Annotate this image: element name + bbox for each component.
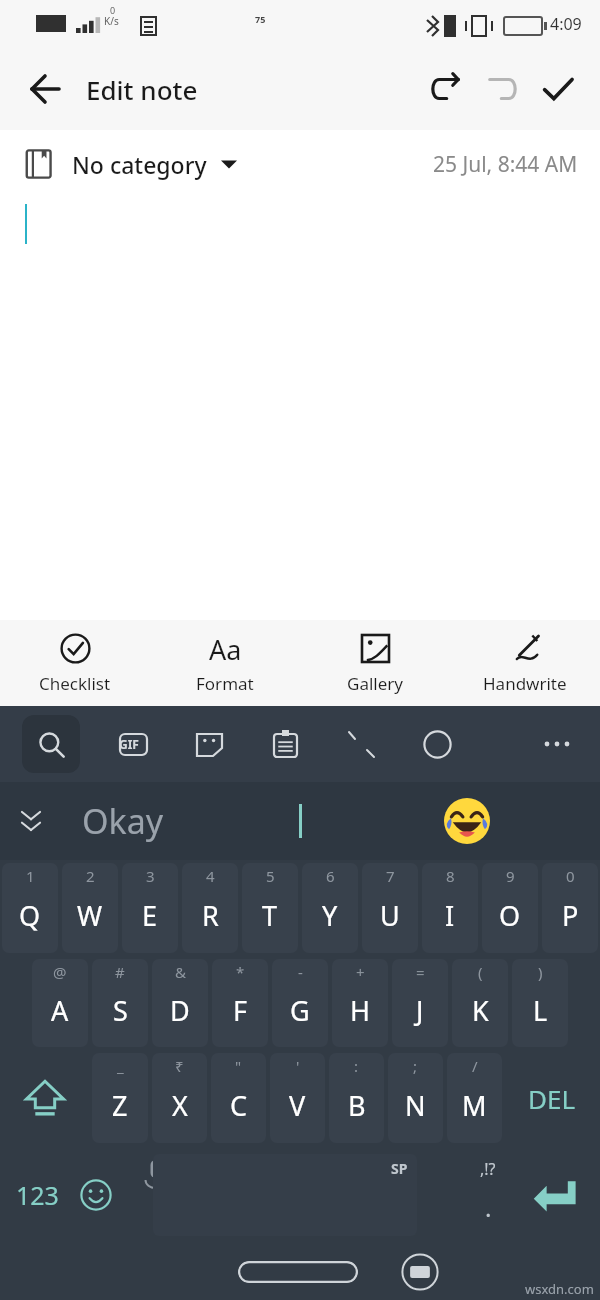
button[interactable]: Punctuation [460,1146,516,1244]
button[interactable]: Collapse [8,798,54,844]
button[interactable]: 2 [62,863,118,953]
button[interactable]: ; [388,1053,443,1143]
button[interactable]: 3 [122,863,178,953]
button[interactable]: Sticker [184,719,234,769]
button[interactable]: ) [512,959,568,1047]
button[interactable]: Aa [155,620,295,706]
staticText: B [348,1087,366,1124]
staticText: ) [538,962,543,982]
button[interactable]: Save [530,61,586,117]
staticText: 4 [206,866,215,886]
button[interactable]: / [447,1053,502,1143]
button[interactable]: Enter [516,1157,592,1233]
staticText: Q [19,897,41,934]
button[interactable]: = [392,959,448,1047]
button[interactable]: No category [22,147,237,181]
staticText: S [113,992,128,1029]
staticText: 4:09 [550,13,582,35]
staticText: 9 [506,866,515,886]
button[interactable]: # [92,959,148,1047]
button[interactable]: Undo [418,61,474,117]
button[interactable]: Info [412,719,462,769]
staticText: Gallery [347,672,403,695]
button[interactable]: _ [92,1053,148,1143]
button[interactable]: GIF [108,719,158,769]
button[interactable]: 7 [362,863,418,953]
button[interactable]: Redo [474,61,530,117]
staticText: C [230,1087,248,1124]
button[interactable]: 4 [182,863,238,953]
button[interactable]: * [212,959,268,1047]
button[interactable]: 123 [6,1164,68,1226]
staticText: E [142,897,158,934]
button[interactable]: 9 [482,863,538,953]
button[interactable]: Okay [82,798,164,844]
button[interactable]: 8 [422,863,478,953]
staticText: L [533,992,548,1029]
button[interactable]: " [211,1053,266,1143]
staticText: = [416,962,425,982]
staticText: * [236,962,245,982]
button[interactable]: @ [32,959,88,1047]
staticText: J [416,992,424,1029]
button[interactable]: 5 [242,863,298,953]
button[interactable]: More [532,719,582,769]
staticText: 0 [110,4,116,16]
button[interactable]: ( [452,959,508,1047]
button[interactable]: Translate [336,719,386,769]
button[interactable]: 0 [542,863,598,953]
staticText: R [202,897,219,934]
staticText: K [472,992,489,1029]
staticText: 25 Jul, 8:44 AM [433,150,578,179]
button[interactable]: Emoji [440,794,494,848]
button[interactable]: Hide keyboard [398,1250,442,1294]
button[interactable]: Checklist [5,620,145,706]
staticText: : [354,1056,359,1076]
button[interactable]: Space [153,1154,417,1236]
staticText: W [77,897,103,934]
button[interactable]: Emoji keyboard [66,1165,126,1225]
staticText: Checklist [39,672,111,695]
staticText: _ [117,1056,124,1076]
button[interactable]: Back [18,63,70,115]
staticText: H [350,992,371,1029]
staticText: 75 [255,13,266,25]
button[interactable]: Search [22,715,80,773]
button[interactable]: Gallery [305,620,445,706]
staticText: 123 [16,1178,59,1212]
staticText: # [115,962,125,982]
button[interactable]: 6 [302,863,358,953]
staticText: M [462,1087,487,1124]
button[interactable]: : [329,1053,384,1143]
staticText: Y [322,897,338,934]
button[interactable]: ₹ [152,1053,207,1143]
button[interactable]: DEL [504,1050,600,1146]
button[interactable]: & [152,959,208,1047]
staticText: + [356,962,365,982]
button[interactable]: Home [238,1261,358,1283]
button[interactable]: Handwrite [455,620,595,706]
staticText: G [290,992,310,1029]
staticText: / [472,1056,478,1076]
staticText: 3 [146,866,155,886]
button[interactable]: - [272,959,328,1047]
button[interactable]: Shift [0,1050,90,1146]
staticText: wsxdn.com [525,1280,594,1298]
staticText: 6 [326,866,335,886]
staticText: ' [296,1056,300,1076]
button[interactable]: Voice input [128,1146,183,1244]
staticText: P [562,897,579,934]
staticText: 5 [266,866,275,886]
button[interactable]: 1 [2,863,58,953]
staticText: Z [112,1087,128,1124]
staticText: Handwrite [483,672,567,695]
staticText: N [405,1087,426,1124]
staticText: A [51,992,69,1029]
staticText: T [262,897,278,934]
button[interactable]: Clipboard [260,719,310,769]
staticText: @ [53,962,67,982]
staticText: 1 [26,866,35,886]
button[interactable]: + [332,959,388,1047]
button[interactable]: ' [270,1053,325,1143]
